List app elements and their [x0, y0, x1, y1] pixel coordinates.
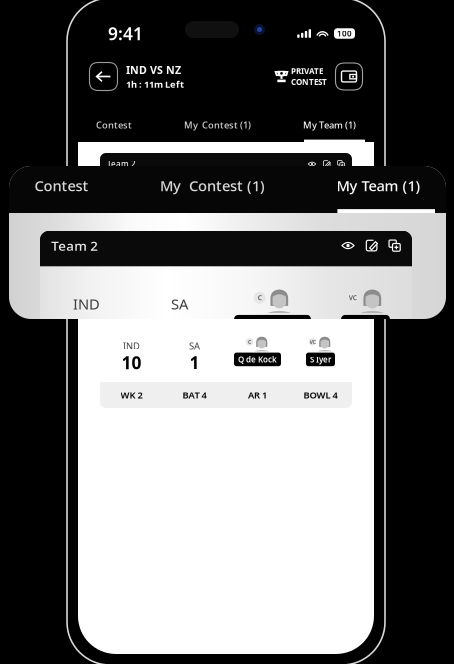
staticText: S Iyer	[347, 317, 383, 335]
button[interactable]: My Team (1)	[330, 171, 427, 200]
staticText: C	[258, 293, 262, 302]
staticText: BAT 4	[182, 389, 206, 401]
staticText: My Contest (1)	[160, 176, 265, 195]
staticText: Team 2	[51, 237, 98, 254]
staticText: My Team (1)	[337, 176, 421, 195]
button[interactable]: Wallet	[335, 62, 363, 90]
staticText: SA	[189, 340, 200, 352]
button[interactable]: Contest	[92, 116, 136, 134]
button[interactable]: PRIVATE	[275, 66, 327, 87]
button[interactable]: Back	[89, 62, 118, 91]
staticText: Contest	[34, 176, 88, 195]
staticText: AR 1	[248, 389, 267, 401]
staticText: VC	[349, 293, 357, 302]
staticText: My Contest (1)	[184, 119, 251, 131]
staticText: 9:41	[108, 22, 143, 45]
staticText: IND	[123, 340, 140, 352]
button[interactable]: My Contest (1)	[180, 116, 255, 134]
staticText: Q de Kock	[240, 317, 304, 335]
staticText: C	[248, 338, 251, 345]
staticText: 1	[189, 351, 199, 374]
staticText: WK 2	[120, 389, 142, 401]
staticText: S Iyer	[310, 354, 331, 365]
button[interactable]: Contest	[28, 171, 95, 200]
button[interactable]: Duplicate team	[337, 160, 345, 168]
staticText: Contest	[96, 119, 132, 131]
staticText: 10	[71, 312, 101, 347]
staticText: 100	[337, 28, 352, 39]
staticText: CONTEST	[291, 76, 327, 87]
staticText: Q de Kock	[238, 354, 277, 365]
staticText: SA	[171, 294, 188, 314]
staticText: VC	[309, 338, 315, 345]
button[interactable]: My Contest (1)	[154, 171, 271, 200]
button[interactable]: Duplicate team	[389, 240, 401, 252]
staticText: IND	[73, 294, 100, 314]
button[interactable]: Preview team	[308, 161, 316, 167]
staticText: BOWL 4	[303, 389, 337, 401]
button[interactable]: My Team (1)	[299, 116, 360, 134]
staticText: 10	[121, 351, 141, 374]
button[interactable]: Edit team	[323, 160, 330, 168]
staticText: PRIVATE	[291, 66, 323, 76]
staticText: Team 2	[107, 159, 136, 169]
button[interactable]: Preview team	[342, 240, 354, 251]
staticText: My Team (1)	[303, 119, 356, 131]
staticText: 1h : 11m Left	[126, 78, 184, 90]
button[interactable]: Edit team	[366, 240, 378, 252]
staticText: IND VS NZ	[126, 63, 181, 77]
